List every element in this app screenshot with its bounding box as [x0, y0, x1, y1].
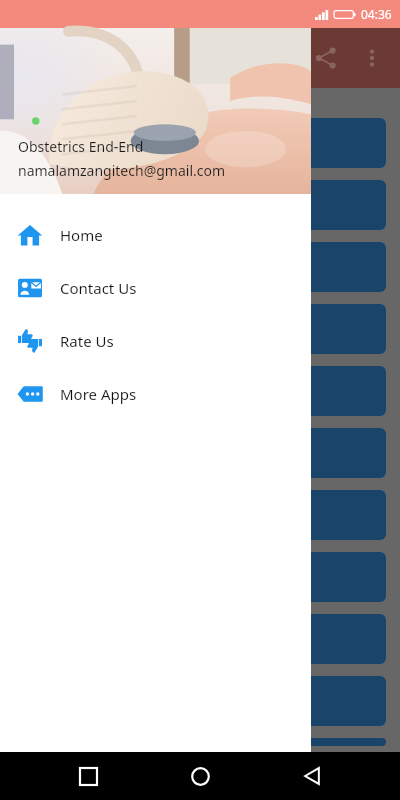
button[interactable]: RH: [14, 738, 386, 746]
button[interactable]: Recents: [64, 752, 112, 800]
staticText: Obstetrics End-End: [18, 137, 144, 156]
button[interactable]: Home: [176, 752, 224, 800]
button[interactable]: Obstetrics End-End: [0, 28, 311, 194]
button[interactable]: CLASSIFICATION: [14, 118, 386, 168]
staticText: Home: [60, 225, 103, 245]
button[interactable]: Home: [0, 208, 311, 261]
button[interactable]: [14, 490, 386, 540]
button[interactable]: Rate Us: [0, 314, 311, 367]
button[interactable]: [14, 180, 386, 230]
button[interactable]: Contact Us: [0, 261, 311, 314]
staticText: Rate Us: [60, 331, 114, 351]
button[interactable]: More Apps: [0, 367, 311, 420]
button[interactable]: PLACENTA ACCRETA: [14, 428, 386, 478]
staticText: Contact Us: [60, 278, 137, 298]
button[interactable]: [14, 614, 386, 664]
staticText: CLASSIFICATION: [141, 133, 259, 153]
button[interactable]: Share: [302, 34, 350, 82]
button[interactable]: [14, 552, 386, 602]
button[interactable]: HYPERTENSION: [14, 366, 386, 416]
staticText: More Apps: [60, 384, 137, 404]
staticText: 04:36: [361, 6, 392, 22]
button[interactable]: [14, 304, 386, 354]
button[interactable]: ABORTION CARE: [14, 242, 386, 292]
button[interactable]: IUFD: [14, 676, 386, 726]
button[interactable]: More options: [350, 36, 394, 80]
staticText: namalamzangitech@gmail.com: [18, 161, 226, 180]
button[interactable]: Back: [288, 752, 336, 800]
